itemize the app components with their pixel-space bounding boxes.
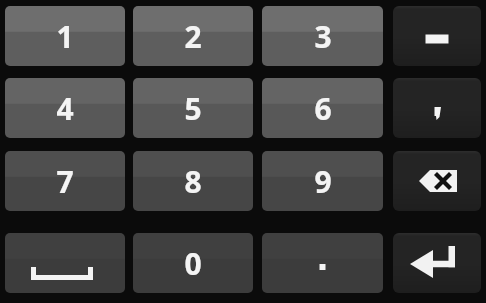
button[interactable]: Comma [393, 78, 481, 138]
button[interactable]: 3 [262, 6, 383, 66]
staticText: 3 [314, 16, 332, 57]
staticText: 9 [314, 161, 332, 202]
button[interactable]: 0 [133, 233, 253, 293]
staticText: 5 [184, 88, 202, 129]
button[interactable]: 4 [5, 78, 125, 138]
staticText: 2 [184, 16, 202, 57]
staticText: 0 [184, 243, 202, 284]
button[interactable]: Space [5, 233, 125, 293]
button[interactable]: 5 [133, 78, 253, 138]
staticText: 6 [314, 88, 332, 129]
staticText: 4 [56, 88, 74, 129]
button[interactable]: Minus [393, 6, 481, 66]
staticText: 1 [56, 16, 74, 57]
button[interactable]: 6 [262, 78, 383, 138]
button[interactable]: Enter [393, 233, 481, 293]
button[interactable]: 9 [262, 151, 383, 211]
button[interactable]: 7 [5, 151, 125, 211]
staticText: 8 [184, 161, 202, 202]
button[interactable]: Period [262, 233, 383, 293]
button[interactable]: 2 [133, 6, 253, 66]
button[interactable]: 1 [5, 6, 125, 66]
staticText: 7 [56, 161, 74, 202]
button[interactable]: Backspace [393, 151, 481, 211]
button[interactable]: 8 [133, 151, 253, 211]
